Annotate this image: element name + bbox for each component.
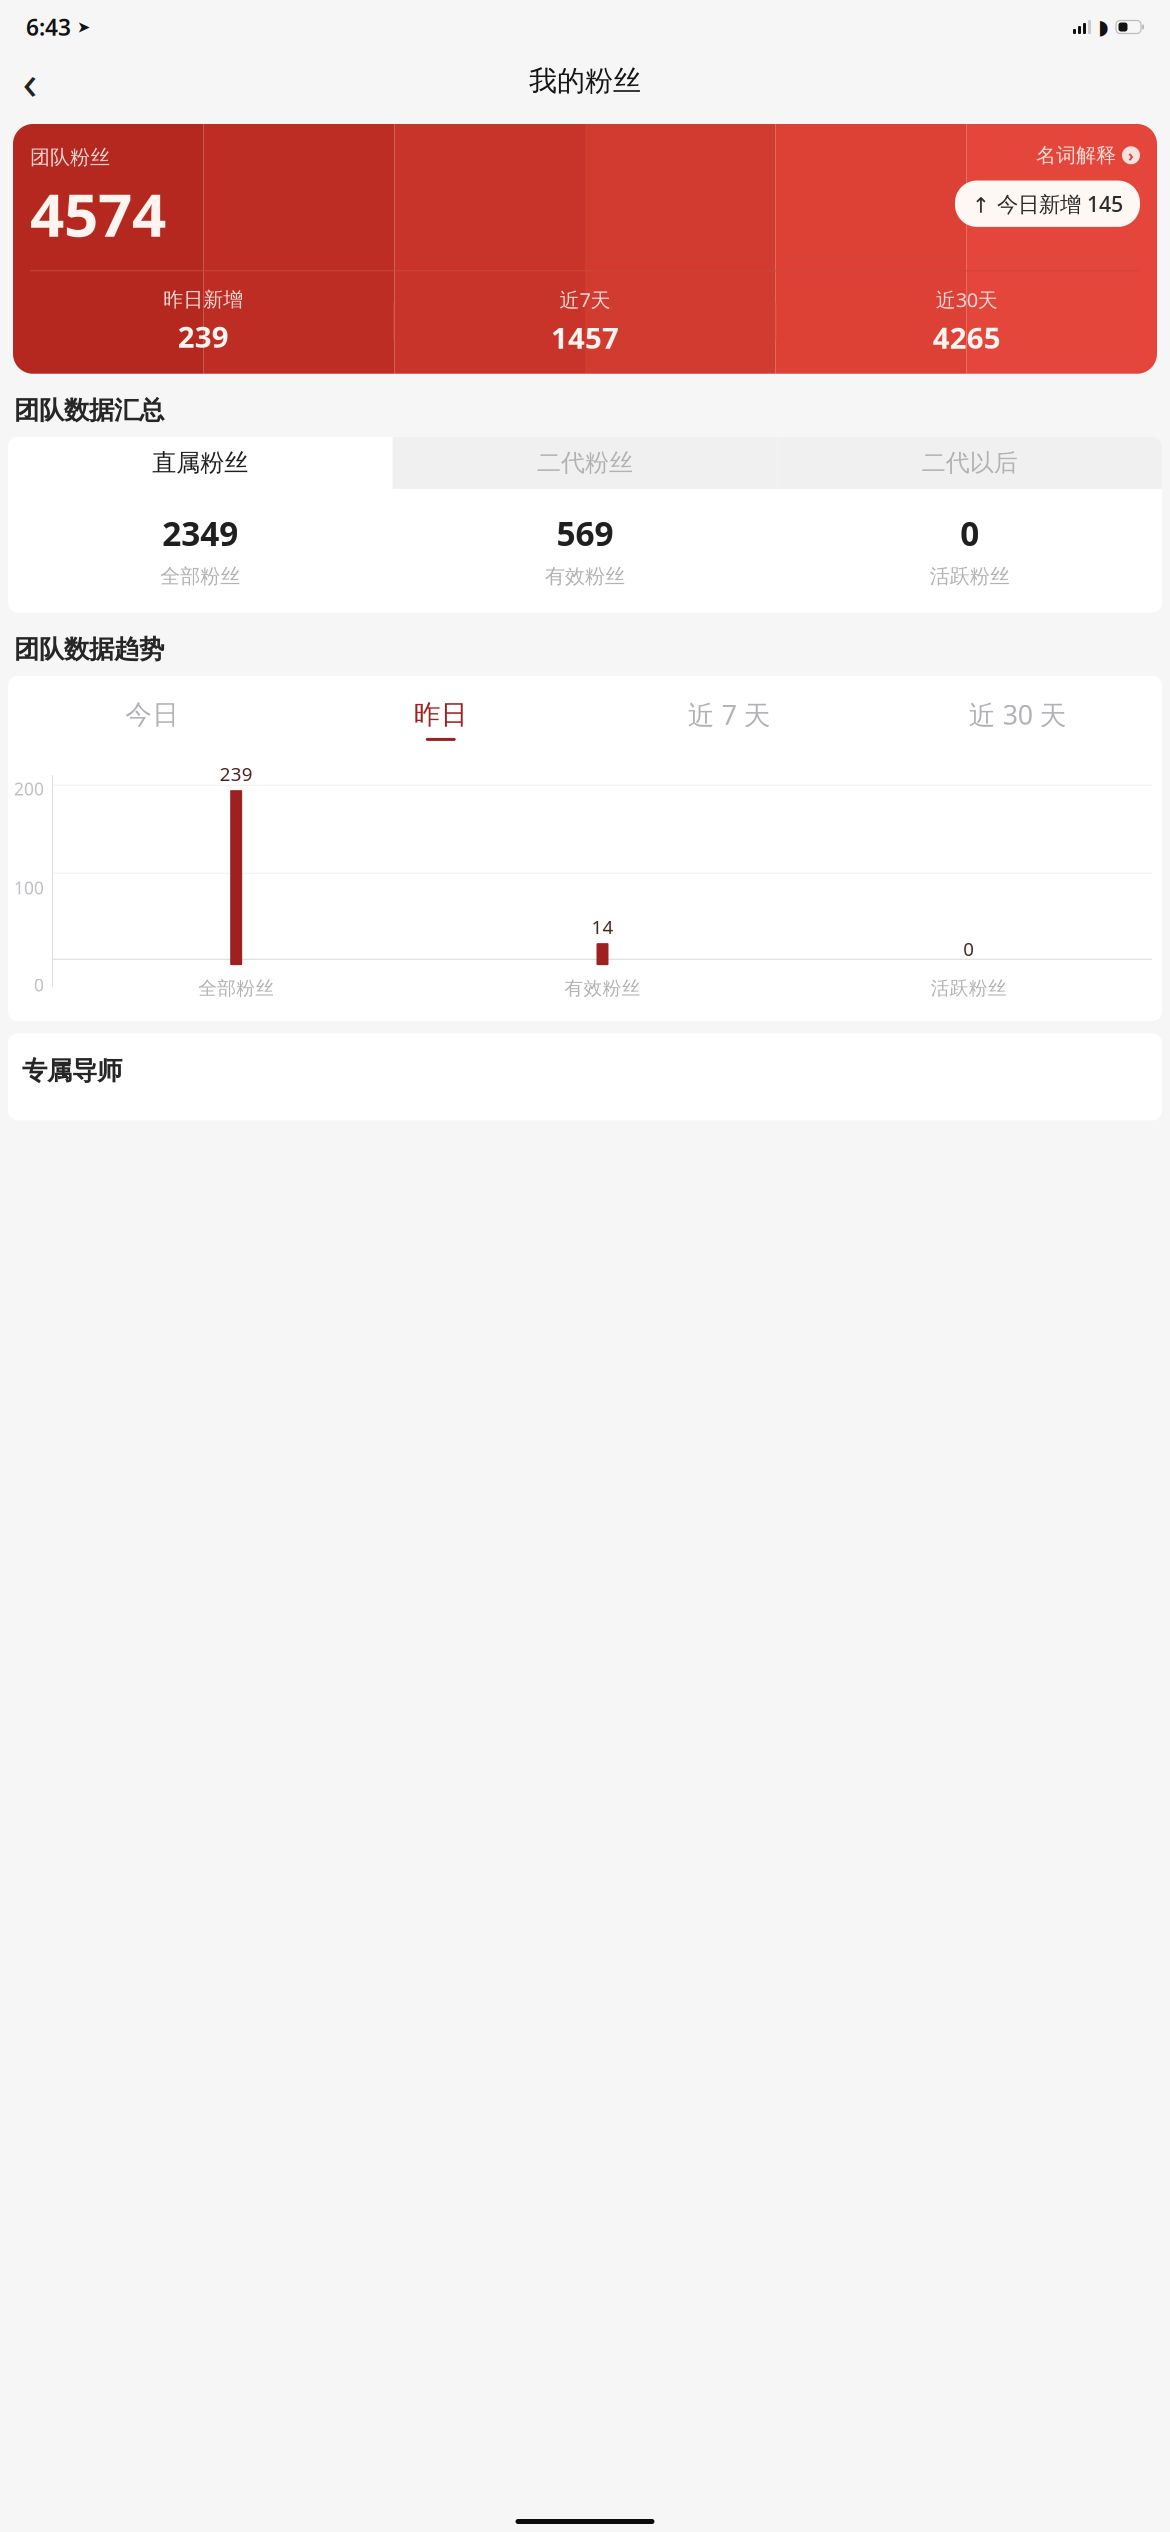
staticText: 全部粉丝 (160, 564, 240, 589)
staticText: › (1128, 145, 1134, 166)
staticText: ➤ (71, 18, 90, 36)
button[interactable]: 二代以后 (777, 437, 1162, 489)
staticText: 我的粉丝 (529, 64, 641, 98)
staticText: 100 (14, 876, 44, 899)
staticText: ‹ (22, 49, 37, 113)
button[interactable]: 二代粉丝 (393, 437, 777, 489)
staticText: 0 (960, 511, 979, 555)
staticText: 4265 (933, 318, 1001, 357)
button[interactable]: ↑ 今日新增 145 (955, 181, 1140, 227)
staticText: 直属粉丝 (152, 448, 248, 478)
staticText: 近30天 (936, 286, 998, 313)
staticText: 2349 (162, 511, 238, 555)
staticText: 0 (963, 936, 974, 961)
staticText: 全部粉丝 (198, 977, 274, 1000)
staticText: 有效粉丝 (564, 977, 640, 1000)
staticText: 239 (178, 317, 229, 356)
staticText: ◗ (1098, 16, 1109, 38)
staticText: 200 (14, 777, 44, 800)
staticText: 二代以后 (922, 448, 1018, 478)
staticText: 14 (591, 914, 613, 939)
button[interactable]: Back (8, 59, 52, 103)
button[interactable]: 名词解释 (1036, 143, 1140, 168)
staticText: ↑ 今日新增 145 (972, 190, 1123, 218)
staticText: 今日 (125, 698, 179, 731)
staticText: 1457 (551, 318, 619, 357)
staticText: 近7天 (559, 286, 610, 313)
button[interactable]: 近 30 天 (873, 692, 1162, 747)
staticText: 名词解释 (1036, 143, 1116, 168)
staticText: 专属导师 (22, 1055, 122, 1086)
staticText: 6:43 (26, 12, 71, 42)
staticText: 近 7 天 (688, 697, 771, 732)
staticText: 4574 (30, 174, 166, 253)
button[interactable]: 今日 (8, 693, 296, 746)
staticText: 团队数据汇总 (14, 395, 164, 426)
staticText: 569 (556, 511, 613, 555)
staticText: 团队数据趋势 (14, 634, 164, 665)
staticText: 0 (34, 973, 44, 996)
staticText: 昨日新增 (163, 287, 243, 312)
staticText: 团队粉丝 (30, 145, 110, 170)
staticText: 二代粉丝 (537, 448, 633, 478)
button[interactable]: 近 7 天 (585, 692, 873, 747)
staticText: 活跃粉丝 (930, 564, 1010, 589)
staticText: 239 (220, 761, 253, 786)
button[interactable]: 昨日 (296, 693, 585, 746)
staticText: 活跃粉丝 (931, 977, 1007, 1000)
staticText: 有效粉丝 (545, 564, 625, 589)
staticText: 昨日 (414, 698, 468, 731)
button[interactable]: 直属粉丝 (8, 437, 393, 489)
staticText: 近 30 天 (969, 697, 1067, 732)
